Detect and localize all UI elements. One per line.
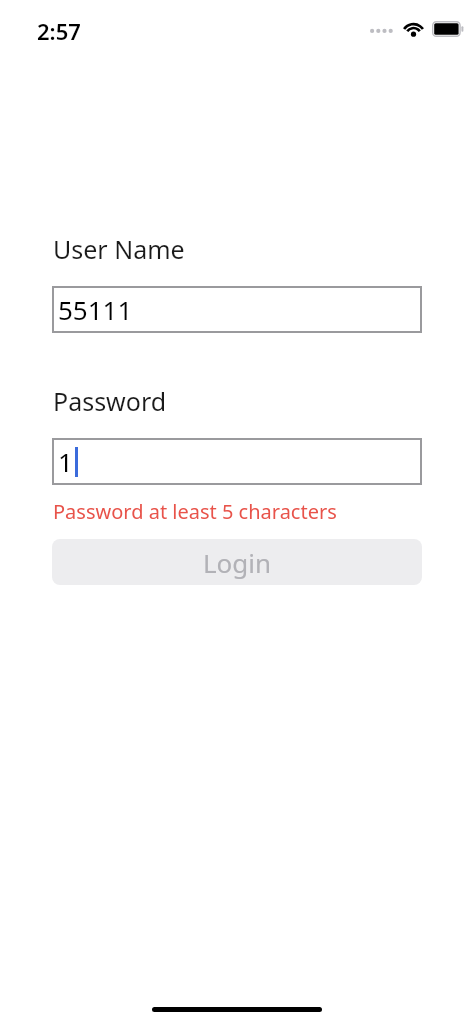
button[interactable]: 55111 (52, 286, 422, 333)
staticText: Password (53, 384, 167, 418)
staticText: User Name (53, 232, 185, 266)
staticText: Password at least 5 characters (53, 498, 337, 525)
staticText: 1 (58, 444, 73, 479)
staticText: 2:57 (37, 16, 81, 46)
button[interactable]: 1 (52, 438, 422, 485)
staticText: Login (203, 545, 272, 580)
button[interactable]: Login (52, 539, 422, 585)
staticText: 55111 (58, 292, 133, 327)
